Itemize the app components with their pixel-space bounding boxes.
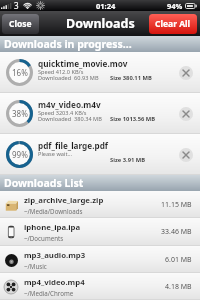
button[interactable]: Clear All [149,14,197,34]
staticText: Downloads [66,15,135,32]
button[interactable]: mp3_audio.mp3 [0,246,200,273]
staticText: 01:24 [96,1,116,11]
staticText: mp4_video.mp4 [24,277,85,288]
staticText: 11.15 MB [161,200,192,210]
staticText: quicktime_movie.mov [38,58,128,69]
button[interactable]: 38% [0,93,200,134]
staticText: Downloaded 60.93 MB [38,74,99,82]
button[interactable]: Cancel download [179,66,193,80]
staticText: 3 [14,0,19,11]
staticText: 16% [12,67,28,78]
staticText: mp3_audio.mp3 [24,250,86,261]
staticText: ~/Music [24,262,47,270]
button[interactable]: Cancel download [179,148,193,162]
staticText: Downloads List [4,176,84,190]
staticText: Please wait... [38,150,72,158]
staticText: 94% [167,1,183,11]
staticText: Speed 3203.4 KB/s [38,109,87,117]
staticText: Downloads in progress... [4,37,132,51]
staticText: 99% [12,149,28,160]
staticText: Size 380.11 MB [110,74,152,82]
staticText: Size 1013.56 MB [110,115,156,123]
button[interactable]: mp4_video.mp4 [0,273,200,300]
staticText: 6.01 MB [165,255,192,265]
staticText: ~/Media/Chrome [24,289,74,297]
button[interactable]: Close [2,14,39,34]
staticText: Speed 412.0 KB/s [38,68,84,76]
staticText: Clear All [155,18,191,30]
staticText: iphone_ipa.ipa [24,222,81,233]
staticText: 38% [12,108,28,119]
button[interactable]: Cancel download [179,107,193,121]
staticText: Close [9,18,32,30]
staticText: pdf_file_large.pdf [38,140,108,151]
staticText: Downloaded 380.34 MB [38,115,102,123]
button[interactable]: 99% [0,134,200,175]
staticText: 4.18 MB [165,282,192,292]
staticText: ~/Documents [24,234,64,242]
staticText: Size 3.91 MB [110,156,146,164]
button[interactable]: iphone_ipa.ipa [0,218,200,246]
staticText: zip_archive_large.zip [24,195,104,206]
staticText: m4v_video.m4v [38,99,101,110]
button[interactable]: 16% [0,52,200,93]
staticText: ~/Media/Downloads [24,207,83,215]
staticText: 33.46 MB [161,227,192,237]
button[interactable]: zip_archive_large.zip [0,191,200,218]
